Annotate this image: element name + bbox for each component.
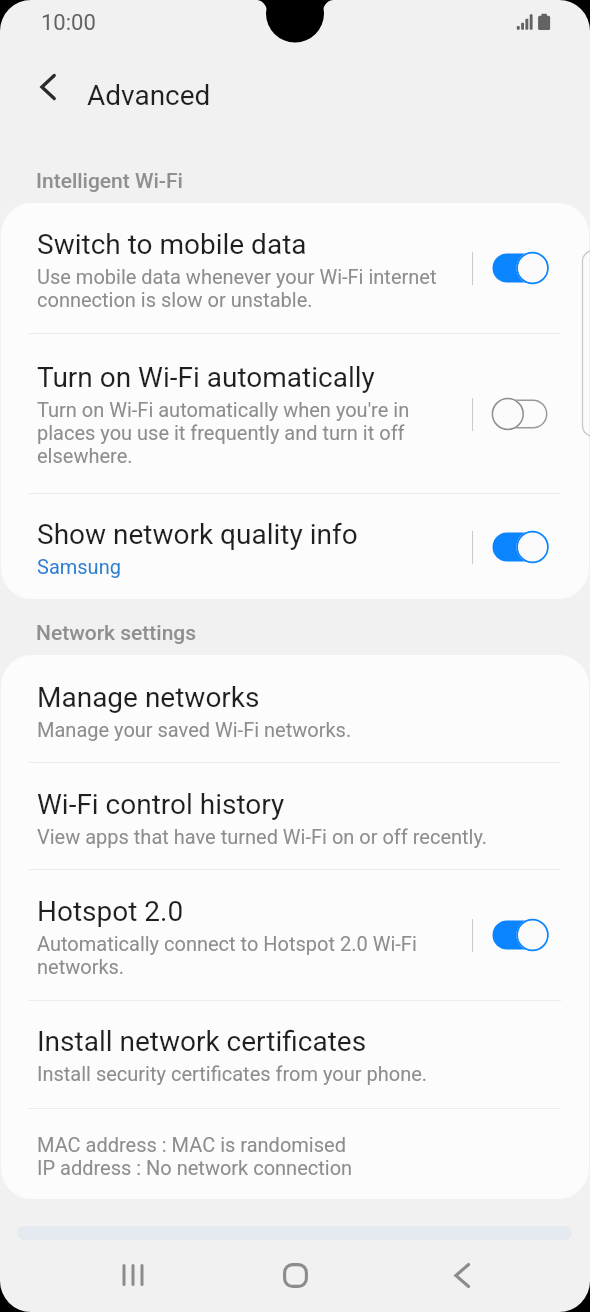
button[interactable]: Show network quality info xyxy=(1,494,589,599)
button[interactable]: Hotspot 2.0 xyxy=(1,870,589,1000)
staticText: Hotspot 2.0 xyxy=(37,895,184,928)
staticText: IP address : No network connection xyxy=(37,1156,353,1179)
staticText: Automatically connect to Hotspot 2.0 Wi-… xyxy=(37,932,455,978)
button[interactable]: Recent apps xyxy=(111,1253,155,1297)
button[interactable]: Back xyxy=(440,1253,484,1297)
staticText: Network settings xyxy=(36,621,197,646)
staticText: Manage your saved Wi-Fi networks. xyxy=(37,718,352,741)
staticText: Switch to mobile data xyxy=(37,228,307,261)
staticText: 10:00 xyxy=(41,10,96,36)
staticText: Advanced xyxy=(87,79,211,112)
staticText: MAC address : MAC is randomised xyxy=(37,1133,346,1156)
button[interactable]: Install network certificates xyxy=(1,1001,589,1108)
staticText: Show network quality info xyxy=(37,518,358,551)
staticText: View apps that have turned Wi-Fi on or o… xyxy=(37,825,488,848)
button[interactable]: Manage networks xyxy=(1,655,589,762)
staticText: Wi-Fi control history xyxy=(37,788,285,821)
button[interactable]: Turn on Wi-Fi automatically xyxy=(1,334,589,493)
button[interactable]: Turn on Turn on Wi-Fi automatically xyxy=(472,396,549,432)
staticText: Turn on Wi-Fi automatically when you're … xyxy=(37,398,455,467)
staticText: Intelligent Wi-Fi xyxy=(36,169,183,194)
staticText: Samsung xyxy=(37,555,121,578)
button[interactable]: Turn off Hotspot 2.0 xyxy=(472,917,549,953)
button[interactable]: Turn off Show network quality info xyxy=(472,529,549,565)
button[interactable]: Switch to mobile data xyxy=(1,203,589,333)
staticText: Manage networks xyxy=(37,681,260,714)
button[interactable]: Home xyxy=(273,1253,317,1297)
staticText: Use mobile data whenever your Wi-Fi inte… xyxy=(37,265,455,311)
staticText: Turn on Wi-Fi automatically xyxy=(37,361,375,394)
button[interactable]: Turn off Switch to mobile data xyxy=(472,250,549,286)
button[interactable]: Wi-Fi control history xyxy=(1,763,589,869)
staticText: Install network certificates xyxy=(37,1025,367,1058)
button[interactable]: Navigate up xyxy=(26,65,70,109)
staticText: Install security certificates from your … xyxy=(37,1062,428,1085)
